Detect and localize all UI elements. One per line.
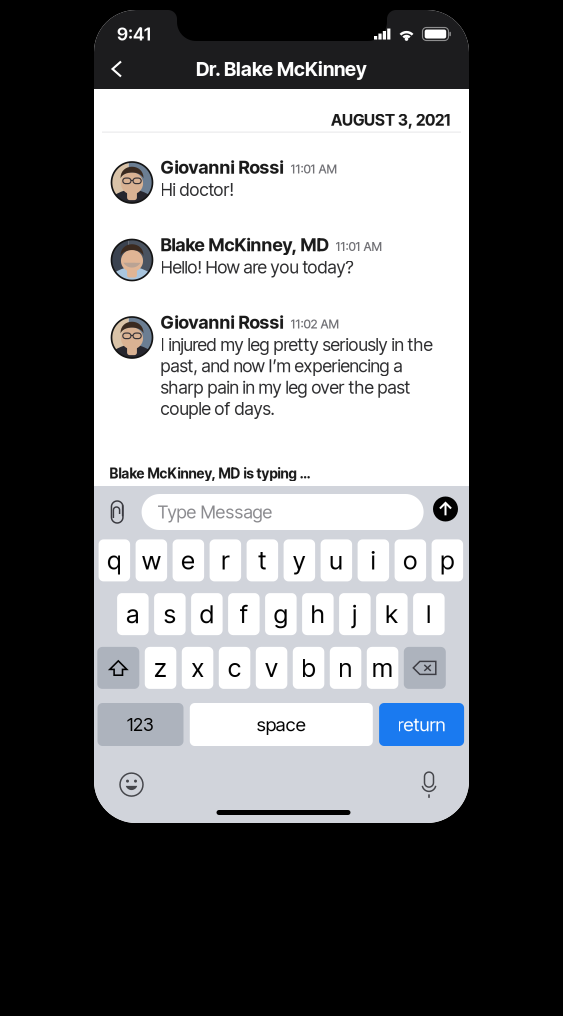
button[interactable]: v: [256, 647, 287, 689]
staticText: r: [221, 545, 229, 576]
staticText: AUGUST 3, 2021: [331, 110, 450, 129]
button[interactable]: m: [367, 647, 398, 689]
staticText: l: [426, 599, 431, 629]
staticText: s: [164, 599, 176, 629]
staticText: j: [352, 599, 357, 629]
button[interactable]: Shift: [97, 647, 139, 689]
button[interactable]: Send: [433, 496, 458, 521]
button[interactable]: Dictation: [411, 767, 447, 803]
button[interactable]: j: [339, 593, 371, 635]
staticText: 11:01 AM: [290, 162, 337, 176]
staticText: f: [240, 599, 248, 629]
staticText: m: [372, 653, 393, 683]
staticText: b: [302, 653, 316, 683]
button[interactable]: 123: [97, 703, 183, 746]
staticText: x: [192, 653, 204, 683]
staticText: c: [228, 653, 241, 683]
button[interactable]: c: [219, 647, 250, 689]
staticText: p: [440, 545, 454, 576]
staticText: v: [265, 653, 278, 683]
button[interactable]: k: [376, 593, 408, 635]
staticText: 9:41: [117, 23, 151, 45]
button[interactable]: l: [413, 593, 445, 635]
staticText: o: [403, 545, 417, 576]
button[interactable]: g: [265, 593, 297, 635]
button[interactable]: n: [330, 647, 361, 689]
staticText: h: [311, 599, 325, 629]
button[interactable]: r: [210, 539, 241, 581]
button[interactable]: Delete: [404, 647, 446, 689]
button[interactable]: w: [136, 539, 167, 581]
button[interactable]: f: [228, 593, 260, 635]
button[interactable]: d: [191, 593, 223, 635]
staticText: a: [126, 599, 139, 629]
staticText: i: [371, 545, 376, 576]
button[interactable]: Emoji: [113, 767, 149, 803]
staticText: n: [339, 653, 353, 683]
staticText: space: [257, 713, 306, 736]
staticText: 11:02 AM: [290, 317, 339, 331]
staticText: Blake McKinney, MD: [160, 234, 328, 255]
staticText: Hi doctor!: [160, 179, 233, 200]
button[interactable]: y: [284, 539, 315, 581]
staticText: e: [181, 545, 195, 576]
staticText: z: [154, 653, 167, 683]
staticText: w: [142, 545, 161, 576]
button[interactable]: p: [432, 539, 463, 581]
staticText: Blake McKinney, MD is typing …: [109, 465, 310, 482]
staticText: Giovanni Rossi: [160, 156, 283, 178]
staticText: Dr. Blake McKinney: [196, 57, 367, 81]
staticText: Giovanni Rossi: [160, 311, 283, 333]
staticText: k: [385, 599, 398, 629]
button[interactable]: i: [358, 539, 389, 581]
staticText: y: [293, 545, 306, 576]
button[interactable]: return: [379, 703, 464, 746]
staticText: return: [398, 713, 446, 736]
staticText: Type Message: [158, 501, 273, 523]
button[interactable]: x: [182, 647, 213, 689]
staticText: 11:01 AM: [335, 239, 382, 254]
button[interactable]: s: [154, 593, 186, 635]
staticText: d: [200, 599, 214, 629]
button[interactable]: e: [173, 539, 204, 581]
staticText: t: [258, 545, 266, 576]
button[interactable]: space: [190, 703, 373, 746]
staticText: I injured my leg pretty seriously in the…: [160, 334, 432, 419]
staticText: 123: [127, 714, 154, 735]
button[interactable]: q: [99, 539, 130, 581]
button[interactable]: a: [117, 593, 149, 635]
button[interactable]: Back: [99, 51, 135, 87]
button[interactable]: z: [145, 647, 176, 689]
button[interactable]: Attach: [103, 492, 133, 532]
button[interactable]: h: [302, 593, 334, 635]
staticText: u: [329, 545, 343, 576]
staticText: g: [274, 599, 288, 629]
button[interactable]: t: [247, 539, 278, 581]
button[interactable]: b: [293, 647, 324, 689]
button[interactable]: u: [321, 539, 352, 581]
staticText: q: [107, 545, 121, 576]
staticText: Hello! How are you today?: [160, 256, 353, 278]
button[interactable]: o: [395, 539, 426, 581]
